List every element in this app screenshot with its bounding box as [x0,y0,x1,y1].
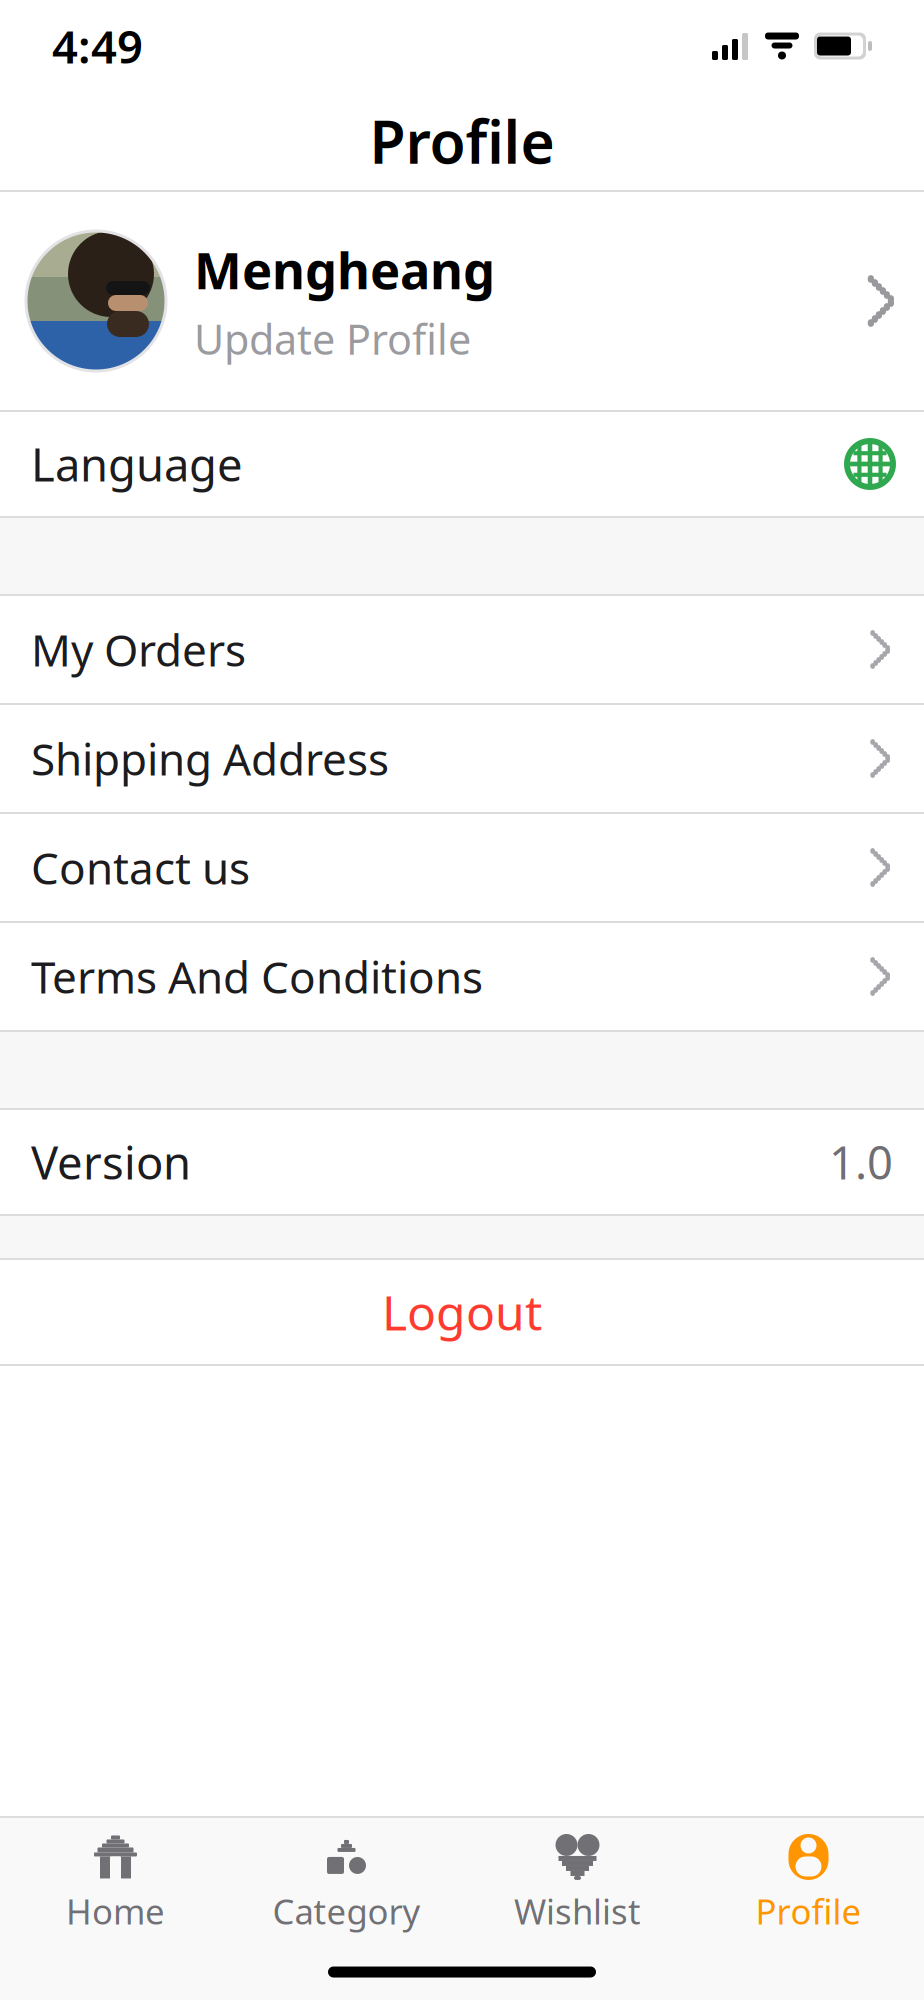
button[interactable]: Logout [0,1260,924,1364]
staticText: Language [31,434,243,494]
button[interactable]: Profile [693,1818,924,1944]
staticText: Home [66,1888,165,1934]
staticText: Contact us [31,838,250,897]
staticText: Terms And Conditions [31,947,483,1006]
button[interactable]: My Orders [0,596,924,705]
button[interactable]: Wishlist [462,1818,693,1944]
button[interactable]: Contact us [0,814,924,923]
button[interactable]: Category [231,1818,462,1944]
staticText: 1.0 [829,1132,893,1192]
staticText: Wishlist [514,1888,641,1934]
staticText: Shipping Address [31,729,389,788]
button[interactable]: Language [0,412,924,518]
staticText: Mengheang [194,236,495,303]
staticText: Version [31,1132,191,1192]
button[interactable]: Mengheang [0,192,924,412]
staticText: Category [272,1888,420,1934]
staticText: Logout [382,1280,542,1344]
button[interactable]: Shipping Address [0,705,924,814]
staticText: Update Profile [194,311,471,366]
staticText: My Orders [31,620,246,679]
button[interactable]: Terms And Conditions [0,923,924,1032]
button[interactable]: Home [0,1818,231,1944]
staticText: Profile [369,102,554,180]
staticText: 4:49 [52,16,143,76]
staticText: Profile [755,1888,861,1934]
